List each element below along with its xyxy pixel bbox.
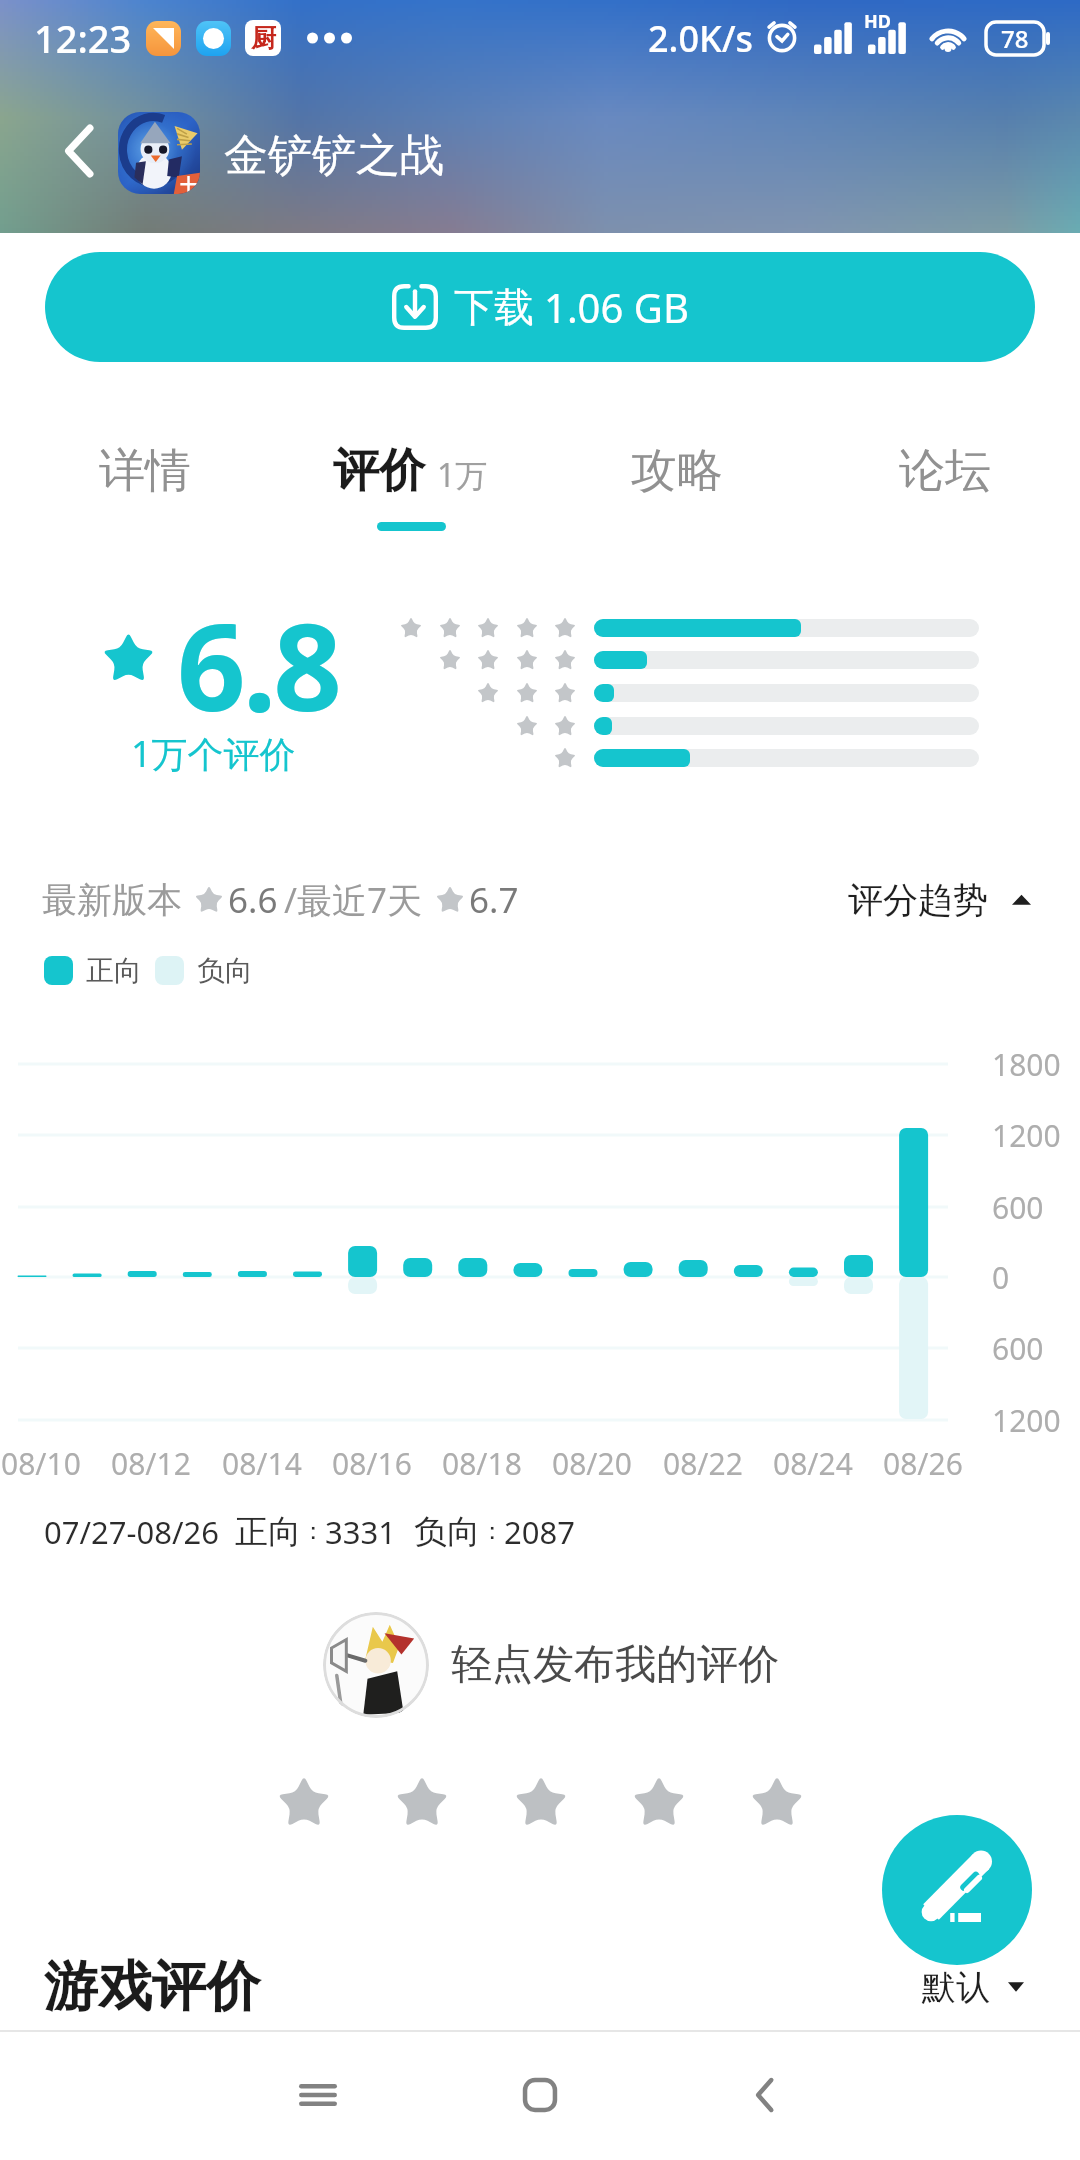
staticText: 金铲铲之战 xyxy=(224,128,444,183)
staticText: 3331 xyxy=(325,1511,396,1553)
button[interactable]: Rate 3 stars xyxy=(502,1764,580,1842)
staticText: /最近7天 xyxy=(284,876,423,924)
button[interactable]: Rate 1 stars xyxy=(265,1764,343,1842)
staticText: 2087 xyxy=(504,1511,575,1553)
button[interactable]: 评价 xyxy=(275,418,545,548)
staticText: 厨 xyxy=(251,23,276,54)
staticText: 负向 xyxy=(414,1511,480,1553)
staticText: 下载 xyxy=(454,282,534,332)
staticText: 2.0K/s xyxy=(648,14,754,63)
staticText: ： xyxy=(480,1516,504,1546)
staticText: 轻点发布我的评价 xyxy=(451,1639,779,1691)
button[interactable]: Back xyxy=(44,115,116,187)
staticText: 6.8 xyxy=(177,583,339,746)
button[interactable]: Rate 2 stars xyxy=(383,1764,461,1842)
staticText: 08/24 xyxy=(773,1443,853,1484)
staticText: 600 xyxy=(992,1187,1044,1228)
staticText: 08/12 xyxy=(111,1443,191,1484)
staticText: 08/20 xyxy=(552,1443,632,1484)
button[interactable]: 下载 xyxy=(45,252,1035,362)
staticText: 1.06 GB xyxy=(544,280,689,334)
staticText: ： xyxy=(301,1516,325,1546)
staticText: 07/27-08/26 xyxy=(44,1511,219,1553)
staticText: 600 xyxy=(992,1328,1044,1369)
staticText: 详情 xyxy=(99,442,191,500)
button[interactable]: 默认 xyxy=(922,1960,1024,2014)
staticText: 最新版本 xyxy=(42,878,182,922)
staticText: 评分趋势 xyxy=(848,878,988,922)
staticText: 攻略 xyxy=(631,442,723,500)
staticText: 6.6 xyxy=(228,876,278,924)
staticText: 1万 xyxy=(437,453,488,497)
button[interactable]: Back xyxy=(706,2030,826,2160)
staticText: 1800 xyxy=(992,1044,1061,1085)
button[interactable]: 论坛 xyxy=(810,418,1080,548)
staticText: 08/26 xyxy=(883,1443,963,1484)
staticText: 08/18 xyxy=(442,1443,522,1484)
button[interactable]: Write a review xyxy=(882,1815,1032,1965)
staticText: 08/10 xyxy=(1,1443,81,1484)
staticText: 0 xyxy=(992,1257,1010,1298)
button[interactable]: Rate 4 stars xyxy=(620,1764,698,1842)
button[interactable]: 攻略 xyxy=(542,418,812,548)
staticText: 6.7 xyxy=(469,876,519,924)
staticText: 论坛 xyxy=(899,442,991,500)
staticText: 1200 xyxy=(992,1115,1061,1156)
staticText: HD xyxy=(864,9,891,34)
button[interactable]: 详情 xyxy=(10,418,280,548)
staticText: 1200 xyxy=(992,1400,1061,1441)
button[interactable]: Recent apps xyxy=(258,2030,378,2160)
staticText: 游戏评价 xyxy=(44,1953,260,2021)
staticText: 负向 xyxy=(197,953,253,988)
button[interactable]: Rate 5 stars xyxy=(738,1764,816,1842)
staticText: 评价 xyxy=(333,442,425,500)
staticText: 12:23 xyxy=(34,12,132,64)
button[interactable]: Home xyxy=(480,2030,600,2160)
staticText: 08/16 xyxy=(332,1443,412,1484)
staticText: 默认 xyxy=(922,1966,990,2009)
button[interactable]: 评分趋势 xyxy=(848,876,1031,924)
staticText: 08/14 xyxy=(222,1443,302,1484)
staticText: 1万个评价 xyxy=(131,729,296,778)
staticText: 78 xyxy=(1001,22,1029,55)
staticText: 08/22 xyxy=(663,1443,743,1484)
button[interactable]: 轻点发布我的评价 xyxy=(323,1612,779,1718)
staticText: 正向 xyxy=(235,1511,301,1553)
staticText: 正向 xyxy=(86,953,142,988)
